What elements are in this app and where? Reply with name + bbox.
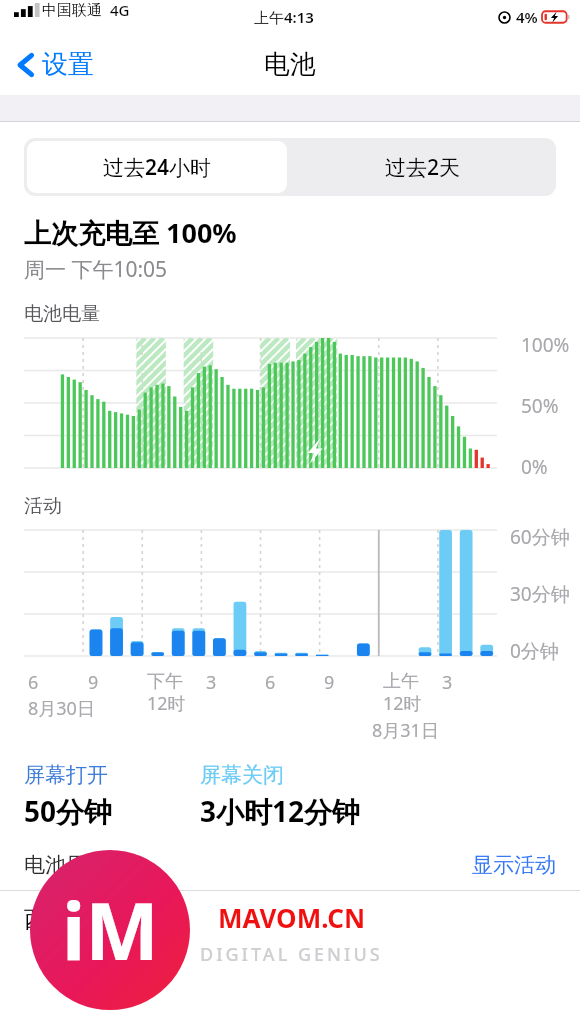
staticText: 上午 12时 <box>383 670 422 716</box>
staticText: 9 <box>324 670 335 695</box>
staticText: 显示活动 <box>472 852 556 878</box>
button[interactable]: 显示活动 <box>472 852 556 878</box>
staticText: 50% <box>521 393 559 419</box>
staticText: MAVOM.CN <box>218 900 366 935</box>
staticText: 活动 <box>24 494 62 518</box>
staticText: 西瓜视频 <box>24 905 116 934</box>
staticText: iM <box>62 877 159 983</box>
staticText: 屏幕关闭 <box>200 762 284 788</box>
staticText: 电池电量 <box>24 302 100 326</box>
staticText: 100% <box>521 332 570 358</box>
button[interactable]: 过去2天 <box>290 138 556 196</box>
staticText: 8月31日 <box>372 718 439 743</box>
staticText: 中国联通 <box>42 1 102 20</box>
staticText: 过去2天 <box>385 153 461 182</box>
staticText: 9 <box>88 670 99 695</box>
button[interactable]: 过去24小时 <box>27 141 287 193</box>
staticText: 过去24小时 <box>103 153 212 182</box>
staticText: 3小时12分钟 <box>200 792 361 830</box>
staticText: 电池 <box>264 48 316 81</box>
staticText: 电池用量 <box>24 852 108 878</box>
staticText: 屏幕打开 <box>24 762 108 788</box>
staticText: DIGITAL GENIUS <box>200 942 383 967</box>
button[interactable]: 设置 <box>12 42 98 87</box>
staticText: 4% <box>516 7 538 27</box>
staticText: 0分钟 <box>510 638 559 664</box>
staticText: 上次充电至 100% <box>24 214 237 251</box>
staticText: 下午 12时 <box>147 670 186 716</box>
staticText: 设置 <box>42 48 94 81</box>
staticText: 3 <box>206 670 217 695</box>
staticText: 上午4:13 <box>254 7 314 27</box>
staticText: 3 <box>442 670 453 695</box>
staticText: 4G <box>110 0 130 20</box>
staticText: 6 <box>265 670 276 695</box>
staticText: 周一 下午10:05 <box>24 255 168 284</box>
staticText: 8月30日 <box>28 696 95 721</box>
staticText: 60分钟 <box>510 524 570 550</box>
staticText: 30分钟 <box>510 581 570 607</box>
staticText: 6 <box>28 670 39 695</box>
staticText: 50分钟 <box>24 792 113 830</box>
staticText: 0% <box>521 454 548 480</box>
